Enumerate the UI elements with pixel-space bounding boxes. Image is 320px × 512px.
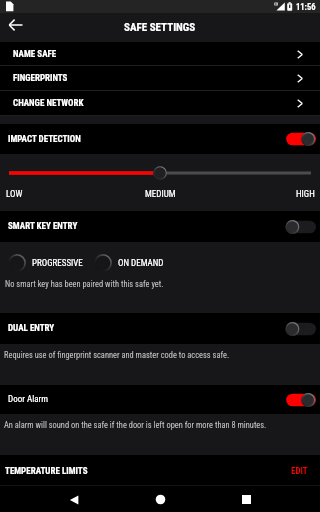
staticText: ON DEMAND <box>118 258 164 269</box>
staticText: Requires use of fingerprint scanner and … <box>4 350 230 360</box>
button[interactable]: CHANGE NETWORK <box>0 91 320 116</box>
staticText: DUAL ENTRY <box>8 323 55 334</box>
button[interactable]: IMPACT DETECTION <box>0 124 320 154</box>
button[interactable]: PROGRESSIVE <box>7 253 83 273</box>
staticText: An alarm will sound on the safe if the d… <box>4 420 267 430</box>
staticText: 11:56 <box>296 2 316 12</box>
staticText: IMPACT DETECTION <box>8 134 81 145</box>
button[interactable]: Back <box>54 485 94 512</box>
button[interactable]: Home <box>140 485 180 512</box>
button[interactable]: Switch off <box>284 320 316 338</box>
button[interactable]: ON DEMAND <box>93 253 164 273</box>
staticText: CHANGE NETWORK <box>13 98 84 109</box>
button[interactable]: Switch on <box>284 130 316 148</box>
staticText: SMART KEY ENTRY <box>8 221 78 232</box>
button[interactable]: EDIT <box>279 460 320 483</box>
button[interactable]: Switch off <box>284 218 316 236</box>
button[interactable]: Back <box>4 14 26 36</box>
staticText: NAME SAFE <box>13 49 57 60</box>
staticText: LOW <box>6 189 23 200</box>
button[interactable]: FINGERPRINTS <box>0 66 320 91</box>
button[interactable]: NAME SAFE <box>0 42 320 66</box>
staticText: SAFE SETTINGS <box>124 21 196 34</box>
staticText: HIGH <box>296 189 315 200</box>
staticText: PROGRESSIVE <box>32 258 83 269</box>
staticText: No smart key has been paired with this s… <box>5 279 164 289</box>
staticText: Door Alarm <box>8 394 49 405</box>
button[interactable]: SMART KEY ENTRY <box>0 211 320 242</box>
button[interactable]: Switch on <box>284 391 316 409</box>
button[interactable]: Recents <box>226 485 266 512</box>
staticText: MEDIUM <box>145 189 176 200</box>
staticText: TEMPERATURE LIMITS <box>5 466 88 477</box>
button[interactable]: TEMPERATURE LIMITS <box>0 455 320 485</box>
staticText: FINGERPRINTS <box>13 73 68 84</box>
button[interactable]: DUAL ENTRY <box>0 313 320 344</box>
button[interactable]: Door Alarm <box>0 385 320 414</box>
staticText: EDIT <box>291 466 308 477</box>
